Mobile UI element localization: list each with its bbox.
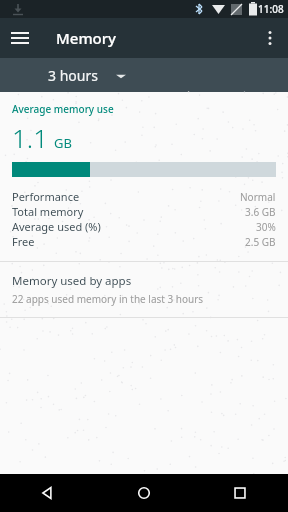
button[interactable]: Home <box>96 474 192 512</box>
button[interactable]: Recent apps <box>192 474 288 512</box>
staticText: Average memory use <box>12 102 114 116</box>
staticText: Memory used by apps <box>12 273 132 289</box>
staticText: 11:08 <box>258 2 284 16</box>
button[interactable]: 3 hours <box>40 60 134 91</box>
staticText: 3.6 GB <box>245 205 276 219</box>
button[interactable]: More options <box>248 18 288 58</box>
staticText: Total memory <box>12 204 84 219</box>
staticText: Normal <box>240 190 276 204</box>
staticText: GB <box>54 134 72 152</box>
staticText: 2.5 GB <box>245 235 276 249</box>
staticText: Performance <box>12 189 80 204</box>
button[interactable]: Back <box>0 474 96 512</box>
staticText: 3 hours <box>48 66 98 85</box>
staticText: Free <box>12 234 35 249</box>
button[interactable]: Memory used by apps <box>0 262 288 317</box>
staticText: Memory <box>56 28 117 48</box>
staticText: 1.1 <box>12 120 49 155</box>
staticText: 22 apps used memory in the last 3 hours <box>12 292 204 306</box>
button[interactable]: Open navigation drawer <box>0 18 40 58</box>
staticText: 30% <box>256 220 276 234</box>
staticText: Average used (%) <box>12 219 101 234</box>
